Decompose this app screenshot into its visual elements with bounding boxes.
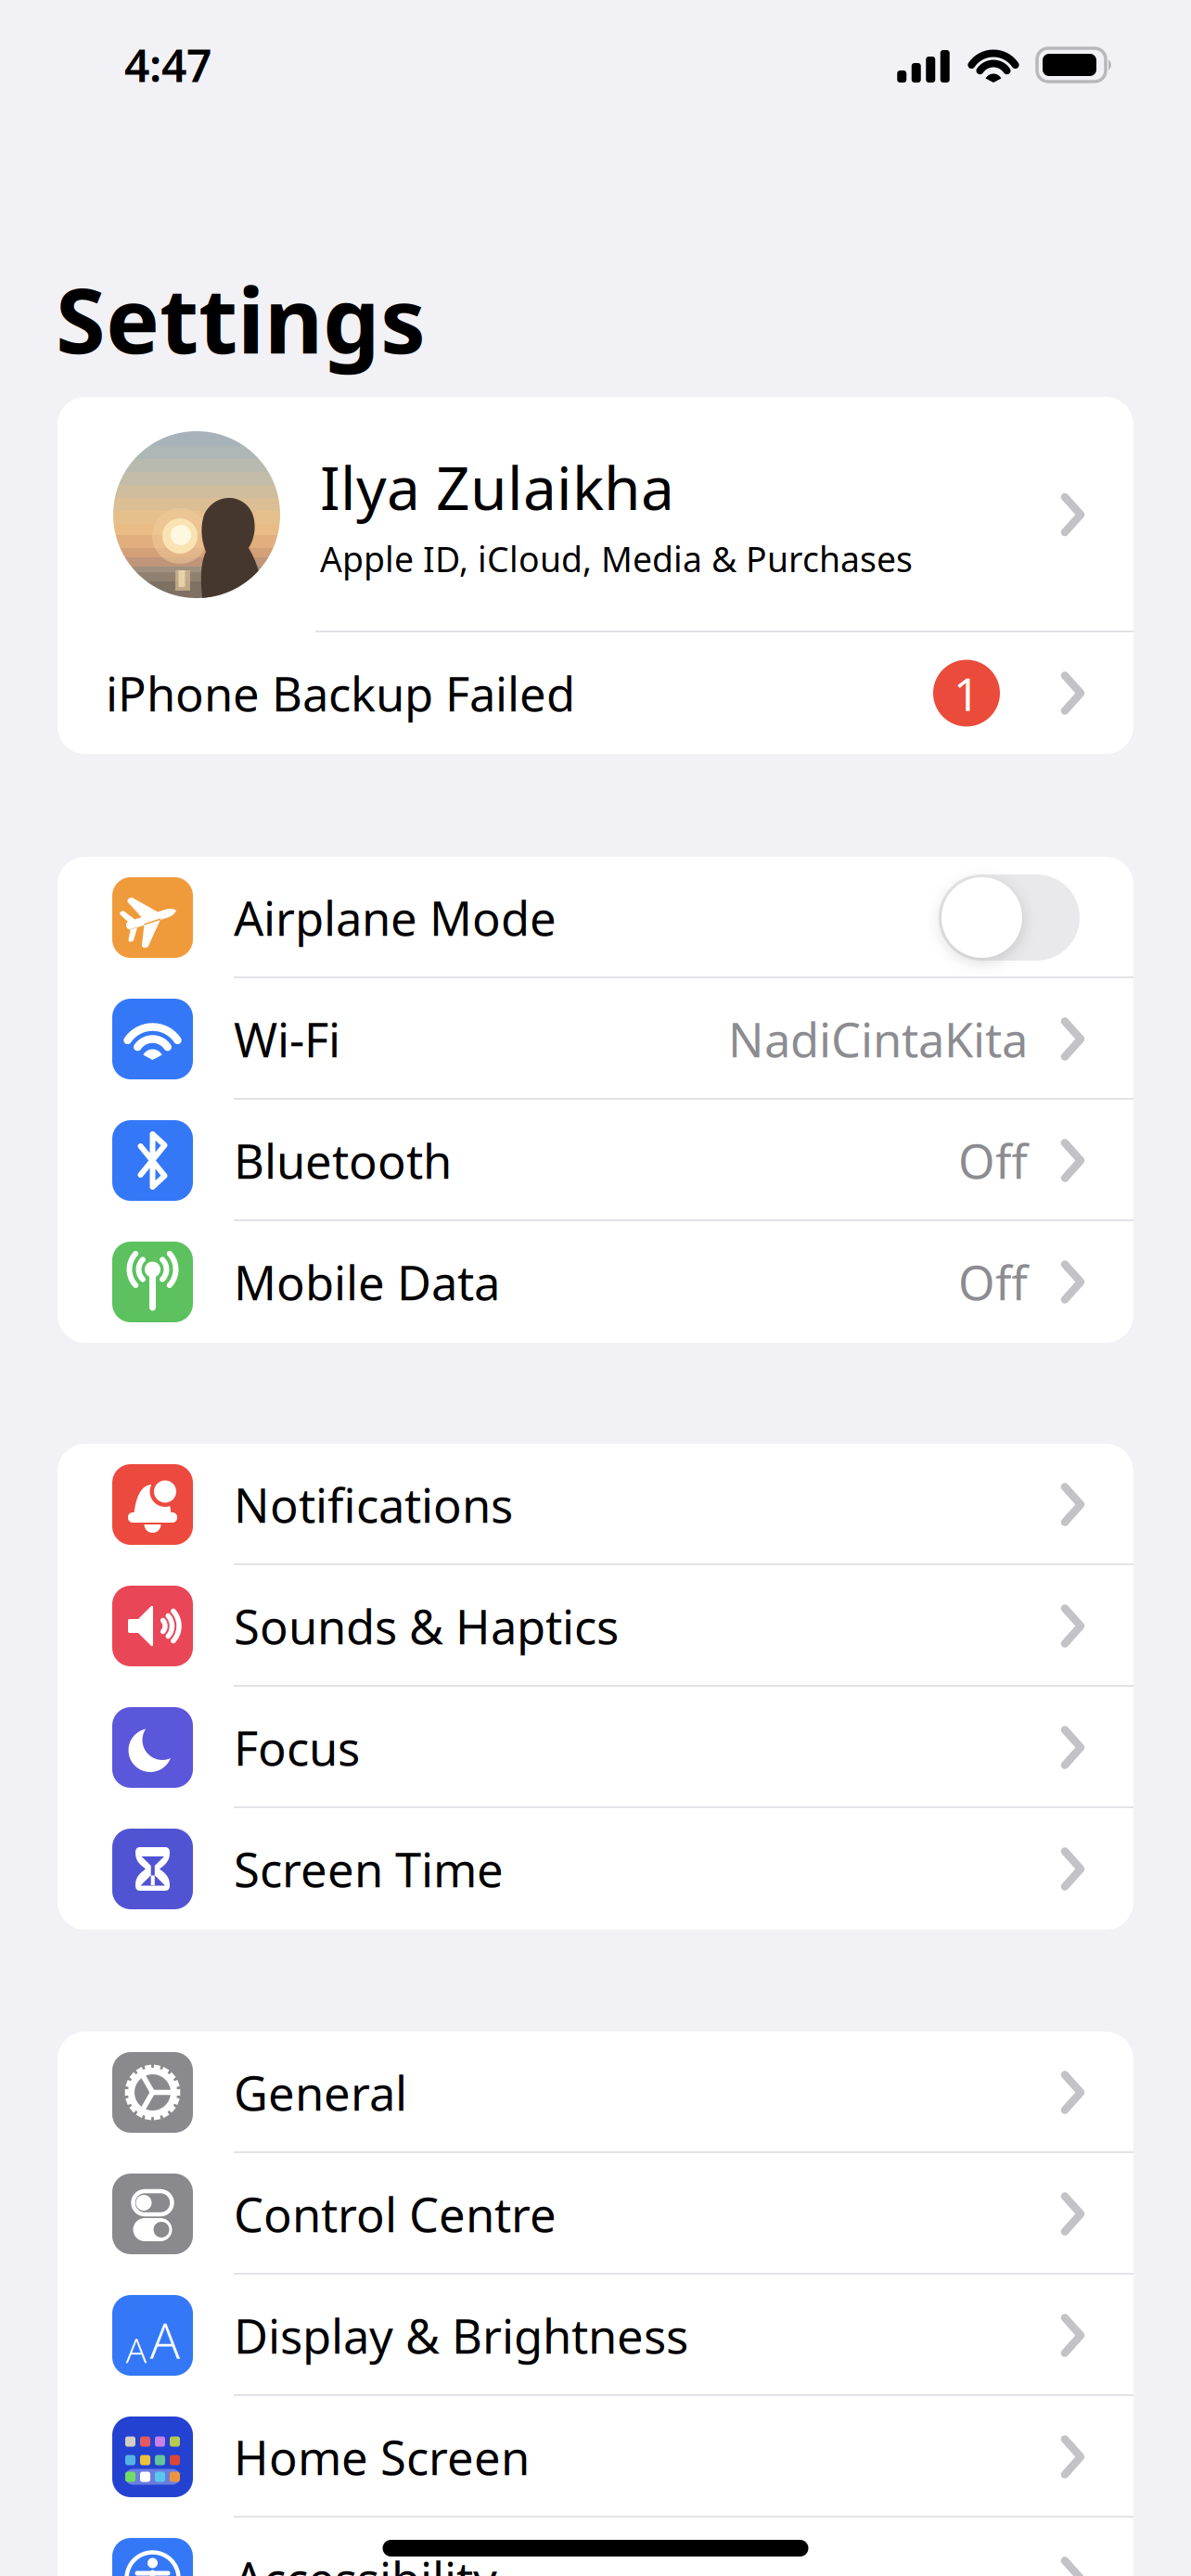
staticText: Off [958, 1129, 1028, 1192]
button[interactable]: Sounds & Haptics [58, 1565, 1133, 1687]
staticText: Control Centre [234, 2183, 557, 2245]
staticText: 4:47 [124, 35, 211, 94]
staticText: A [126, 2326, 147, 2372]
staticText: Bluetooth [234, 1129, 452, 1192]
button[interactable]: iPhone Backup Failed [58, 632, 1133, 754]
button[interactable]: Screen Time [58, 1808, 1133, 1930]
staticText: Display & Brightness [234, 2304, 688, 2367]
staticText: Sounds & Haptics [234, 1595, 619, 1657]
staticText: Home Screen [234, 2426, 530, 2488]
staticText: Accessibility [234, 2547, 497, 2576]
button[interactable]: Accessibility [58, 2518, 1133, 2576]
staticText: Apple ID, iCloud, Media & Purchases [320, 536, 913, 582]
button[interactable]: Airplane Mode [58, 857, 1133, 978]
staticText: Settings [56, 259, 426, 379]
button[interactable]: A [58, 2275, 1133, 2396]
staticText: Mobile Data [234, 1251, 500, 1313]
staticText: General [234, 2061, 407, 2124]
staticText: Off [958, 1251, 1028, 1313]
staticText: Screen Time [234, 1838, 504, 1900]
staticText: Airplane Mode [234, 886, 557, 949]
staticText: 1 [954, 663, 980, 723]
staticText: A [150, 2307, 179, 2372]
button[interactable]: Wi-Fi [58, 978, 1133, 1100]
button[interactable]: Bluetooth [58, 1100, 1133, 1221]
button[interactable]: Focus [58, 1687, 1133, 1808]
staticText: Wi-Fi [234, 1008, 340, 1070]
staticText: NadiCintaKita [728, 1008, 1028, 1070]
button[interactable]: Ilya Zulaikha [58, 397, 1133, 632]
button[interactable]: Control Centre [58, 2153, 1133, 2275]
button[interactable]: Home Screen [58, 2396, 1133, 2518]
staticText: Notifications [234, 1473, 513, 1536]
staticText: iPhone Backup Failed [106, 662, 575, 724]
button[interactable]: Mobile Data [58, 1221, 1133, 1343]
staticText: Ilya Zulaikha [320, 448, 674, 526]
button[interactable]: Notifications [58, 1444, 1133, 1565]
staticText: Focus [234, 1716, 360, 1779]
button[interactable]: General [58, 2032, 1133, 2153]
